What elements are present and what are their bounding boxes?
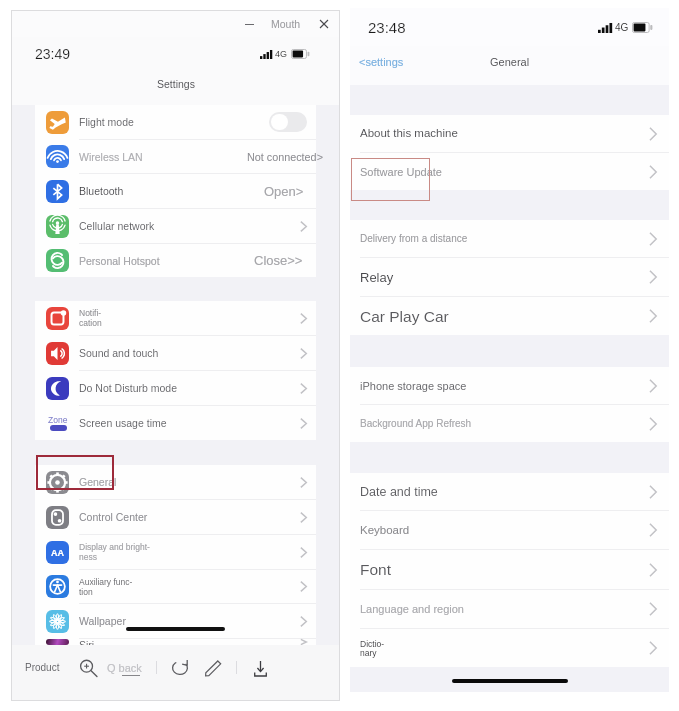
staticText: Dictio- nary [360, 639, 649, 658]
staticText: Language and region [360, 603, 649, 615]
button[interactable]: Font [350, 550, 669, 589]
staticText: Date and time [360, 485, 649, 499]
staticText: Open> [264, 184, 304, 199]
staticText: Personal Hotspot [79, 255, 258, 267]
button[interactable]: Relay [350, 258, 669, 296]
staticText: Q back [107, 662, 142, 674]
button[interactable]: Minimize [237, 12, 261, 36]
button[interactable]: Keyboard [350, 511, 669, 549]
button[interactable]: Background App Refresh [350, 405, 669, 442]
staticText: 23:49 [35, 46, 71, 62]
button[interactable]: AA [35, 535, 316, 569]
staticText: 23:48 [368, 19, 406, 36]
button[interactable]: Close [313, 13, 335, 35]
staticText: Display and bright- ness [79, 542, 296, 562]
staticText: Not connected> [247, 151, 323, 163]
staticText: Product [25, 662, 60, 673]
button[interactable]: Notifi- cation [35, 301, 316, 335]
button[interactable]: Language and region [350, 590, 669, 628]
staticText: 4G [615, 22, 629, 33]
staticText: Background App Refresh [360, 418, 649, 429]
staticText: Font [360, 561, 649, 578]
button[interactable]: Car Play Car [350, 297, 669, 335]
staticText: Bluetooth [79, 185, 267, 197]
button[interactable]: Flight mode toggle [269, 112, 307, 132]
staticText: Flight mode [79, 116, 269, 128]
staticText: Control Center [79, 511, 296, 523]
staticText: Do Not Disturb mode [79, 382, 296, 394]
staticText: Mouth [271, 18, 301, 30]
staticText: Wireless LAN [79, 151, 231, 163]
button[interactable]: Zone [35, 406, 316, 440]
staticText: Car Play Car [360, 308, 649, 325]
button[interactable]: Cellular network [35, 209, 316, 243]
button[interactable]: Siri [35, 639, 316, 645]
staticText: Relay [360, 270, 649, 285]
staticText: Auxiliary func- tion [79, 577, 296, 597]
button[interactable]: Zoom in [77, 657, 99, 679]
staticText: Notifi- cation [79, 308, 296, 328]
button[interactable]: <settings [357, 53, 406, 71]
staticText: About this machine [360, 127, 649, 140]
staticText: Close>> [254, 253, 303, 268]
staticText: General [490, 56, 530, 68]
staticText: Siri [79, 639, 296, 645]
button[interactable]: Flight mode [35, 105, 316, 139]
staticText: Settings [157, 78, 195, 90]
button[interactable]: Refresh [169, 657, 191, 679]
staticText: Delivery from a distance [360, 233, 649, 244]
button[interactable]: Software Update [350, 153, 669, 190]
button[interactable]: Wallpaper [35, 604, 316, 638]
button[interactable]: Do Not Disturb mode [35, 371, 316, 405]
staticText: 4G [275, 49, 288, 59]
staticText: General [79, 476, 296, 488]
staticText: Screen usage time [79, 417, 296, 429]
button[interactable]: Download [249, 657, 271, 679]
button[interactable]: Auxiliary func- tion [35, 570, 316, 603]
button[interactable]: Edit [202, 657, 224, 679]
button[interactable]: General [35, 465, 316, 499]
button[interactable]: Wireless LAN [35, 140, 316, 173]
staticText: iPhone storage space [360, 380, 649, 392]
staticText: Sound and touch [79, 347, 296, 359]
staticText: Wallpaper [79, 615, 296, 627]
staticText: Software Update [360, 166, 649, 178]
staticText: Zone [48, 415, 68, 424]
button[interactable]: Date and time [350, 473, 669, 510]
staticText: Keyboard [360, 524, 649, 537]
button[interactable]: iPhone storage space [350, 367, 669, 404]
staticText: Cellular network [79, 220, 296, 232]
staticText: <settings [359, 56, 404, 68]
button[interactable]: Personal Hotspot [35, 244, 316, 277]
button[interactable]: Delivery from a distance [350, 220, 669, 257]
button[interactable]: Dictio- nary [350, 629, 669, 667]
button[interactable]: About this machine [350, 115, 669, 152]
button[interactable]: Sound and touch [35, 336, 316, 370]
staticText: AA [51, 548, 64, 558]
button[interactable]: Control Center [35, 500, 316, 534]
button[interactable]: Bluetooth [35, 174, 316, 208]
